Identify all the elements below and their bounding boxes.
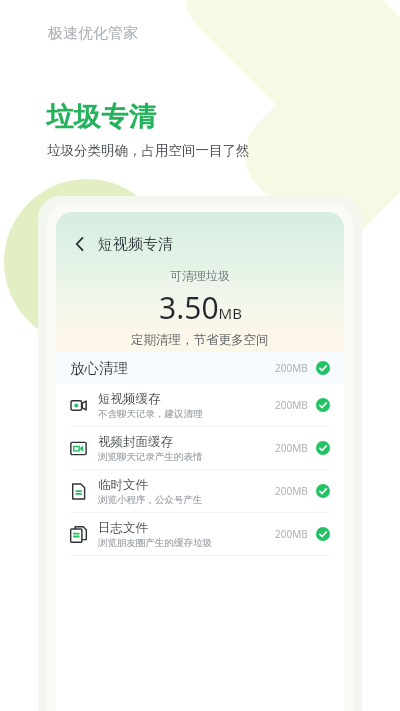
staticText: 不含聊天记录，建议清理: [98, 408, 203, 420]
staticText: 临时文件: [98, 477, 148, 493]
staticText: 3.50MB: [159, 287, 242, 328]
staticText: 短视频专清: [98, 235, 173, 254]
button[interactable]: 日志文件: [56, 513, 344, 555]
button[interactable]: 放心清理: [56, 352, 344, 384]
staticText: 200MB: [275, 484, 308, 498]
staticText: 日志文件: [98, 520, 148, 536]
button[interactable]: 短视频缓存: [56, 384, 344, 426]
staticText: 定期清理，节省更多空间: [131, 332, 269, 348]
staticText: 视频封面缓存: [98, 434, 173, 450]
staticText: 200MB: [275, 441, 308, 455]
staticText: 放心清理: [70, 359, 128, 377]
staticText: 垃圾专清: [46, 100, 156, 134]
staticText: 可清理垃圾: [170, 268, 230, 283]
staticText: 200MB: [275, 361, 308, 375]
staticText: 200MB: [275, 527, 308, 541]
button[interactable]: 临时文件: [56, 470, 344, 512]
button[interactable]: Back: [68, 230, 173, 258]
staticText: 浏览聊天记录产生的表情: [98, 451, 203, 463]
staticText: 极速优化管家: [48, 24, 138, 43]
staticText: 浏览小程序，公众号产生: [98, 494, 203, 506]
other: Back: [68, 232, 92, 256]
staticText: 短视频缓存: [98, 391, 161, 407]
staticText: 200MB: [275, 398, 308, 412]
button[interactable]: 视频封面缓存: [56, 427, 344, 469]
staticText: 浏览朋友圈产生的缓存垃圾: [98, 537, 212, 549]
staticText: 垃圾分类明确，占用空间一目了然: [47, 142, 250, 159]
